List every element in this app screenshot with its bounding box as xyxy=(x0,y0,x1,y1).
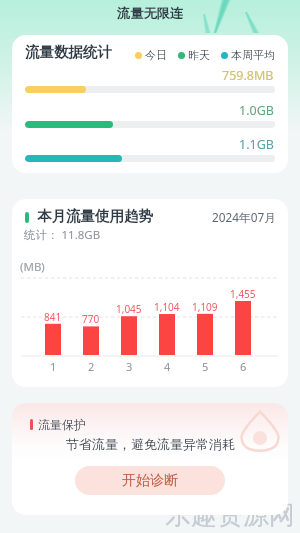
staticText: 3 xyxy=(126,359,133,374)
staticText: 1.1GB xyxy=(239,136,274,153)
staticText: 759.8MB xyxy=(222,67,274,84)
staticText: 本周平均 xyxy=(231,48,275,62)
staticText: 1,455 xyxy=(230,287,256,301)
staticText: 昨天 xyxy=(188,48,210,62)
button[interactable]: 开始诊断 xyxy=(75,466,225,495)
staticText: 1,109 xyxy=(192,300,218,314)
staticText: 770 xyxy=(82,312,100,326)
staticText: 节省流量，避免流量异常消耗 xyxy=(66,436,235,452)
staticText: 流量无限连 xyxy=(117,5,183,22)
staticText: 流量保护 xyxy=(38,417,86,432)
staticText: 4 xyxy=(164,359,171,374)
staticText: 1 xyxy=(50,359,57,374)
staticText: (MB) xyxy=(20,259,45,275)
staticText: 6 xyxy=(240,359,247,374)
staticText: 今日 xyxy=(145,48,167,62)
staticText: 1,045 xyxy=(116,302,142,316)
staticText: 统计： 11.8GB xyxy=(24,227,101,243)
staticText: 1.0GB xyxy=(239,102,274,119)
staticText: 1,104 xyxy=(154,300,180,314)
staticText: 流量数据统计 xyxy=(25,43,112,61)
staticText: 乐趣资源网 xyxy=(165,499,295,532)
staticText: 开始诊断 xyxy=(122,472,178,490)
staticText: 本月流量使用趋势 xyxy=(37,207,153,225)
staticText: 841 xyxy=(44,310,62,324)
staticText: 2024年07月 xyxy=(212,209,277,225)
staticText: 5 xyxy=(202,359,209,374)
staticText: 2 xyxy=(88,359,95,374)
